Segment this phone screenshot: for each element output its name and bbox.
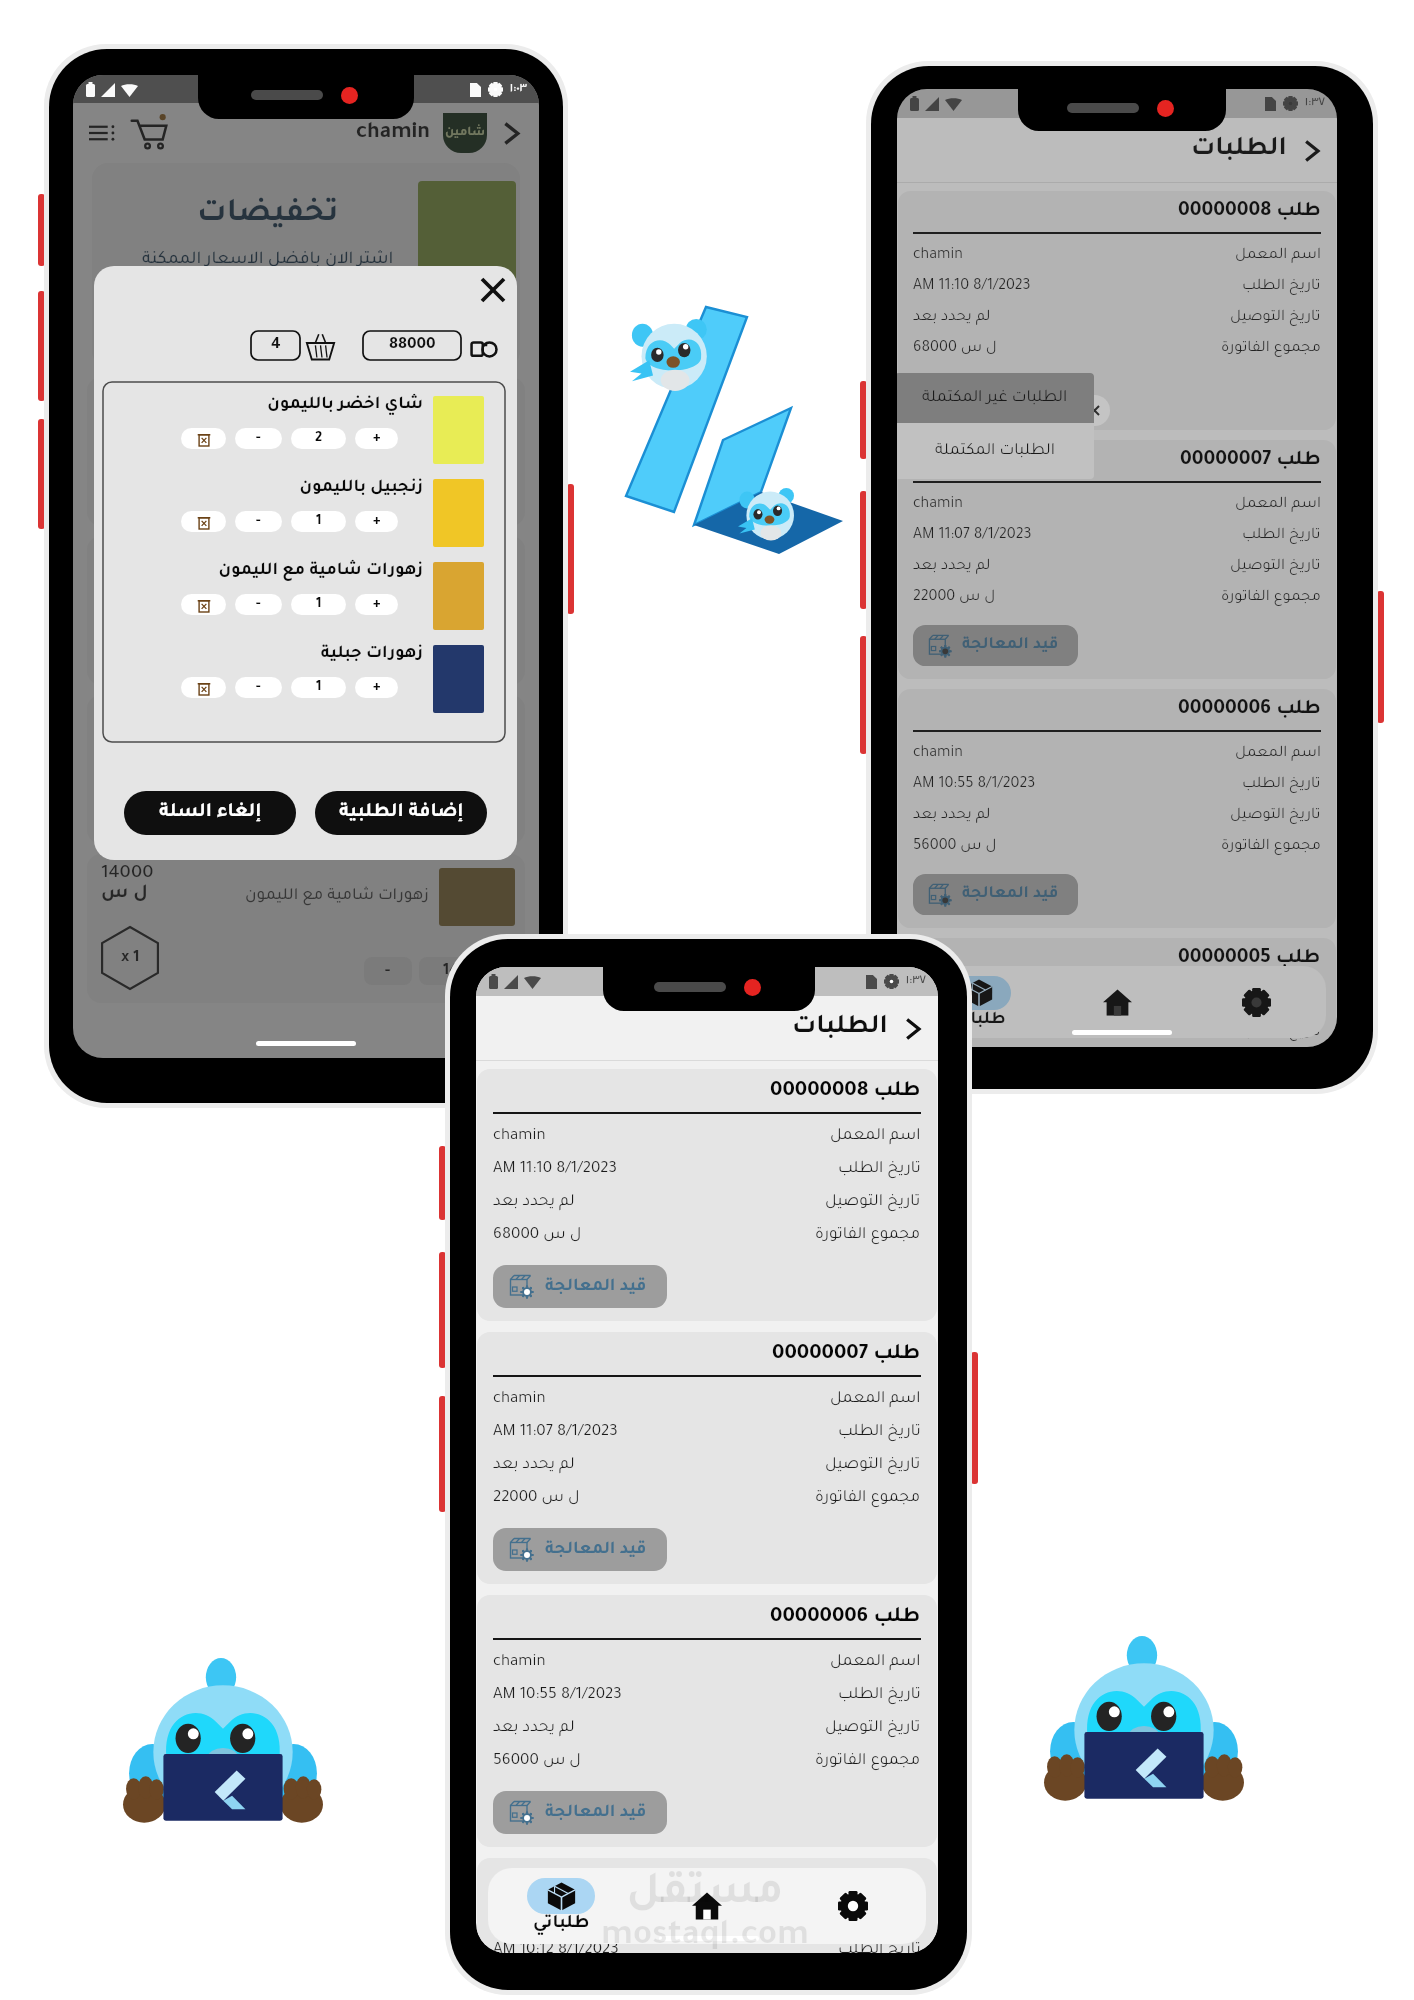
button[interactable]: - bbox=[235, 511, 282, 532]
button[interactable]: Settings bbox=[780, 1868, 926, 1944]
button[interactable]: 1 bbox=[291, 677, 346, 698]
staticText: - bbox=[256, 431, 261, 446]
button[interactable]: طلب 00000007 bbox=[898, 440, 1336, 679]
button[interactable]: إضافة الطلبية bbox=[315, 791, 487, 835]
button[interactable]: إلغاء السلة bbox=[124, 791, 296, 835]
staticText: 4 bbox=[271, 337, 281, 354]
staticText: 19000 bbox=[101, 387, 153, 407]
staticText: - bbox=[385, 645, 391, 662]
button[interactable]: 2 bbox=[291, 428, 346, 449]
button[interactable]: طلب 00000006 bbox=[898, 689, 1336, 928]
button[interactable]: الطلبات غير المكتملة bbox=[897, 373, 1094, 423]
button[interactable]: - bbox=[364, 639, 412, 667]
button[interactable]: - bbox=[364, 798, 412, 826]
button[interactable]: - bbox=[364, 480, 412, 508]
button[interactable]: + bbox=[355, 511, 398, 532]
other: Back bbox=[902, 1018, 924, 1040]
button[interactable] bbox=[181, 428, 226, 449]
button[interactable]: - bbox=[364, 957, 412, 985]
button[interactable]: + bbox=[355, 594, 398, 615]
button[interactable]: - bbox=[235, 428, 282, 449]
button[interactable]: زهورات شامية مع الليمون bbox=[87, 854, 525, 1003]
button[interactable]: شاي اخضر بالليمون الطبيعي المنعش bbox=[87, 377, 525, 526]
button[interactable]: chamin bbox=[356, 113, 523, 153]
button[interactable] bbox=[181, 511, 226, 532]
staticText: ١:٠٣ bbox=[510, 83, 528, 96]
staticText: - bbox=[256, 680, 261, 695]
button[interactable]: 17000 bbox=[419, 798, 511, 826]
button[interactable]: طلب 00000007 bbox=[477, 1332, 937, 1584]
button[interactable]: طلب 00000008 bbox=[477, 1069, 937, 1321]
staticText: شاي اخضر بالليمون bbox=[267, 396, 423, 414]
staticText: اسم المعمل bbox=[830, 1128, 921, 1145]
staticText: طلب 00000005 bbox=[1178, 949, 1321, 970]
button[interactable]: Close bbox=[482, 279, 504, 301]
staticText: x 1 bbox=[121, 950, 140, 967]
staticText: قيد المعالجة bbox=[962, 886, 1059, 903]
staticText: اسم المعمل bbox=[830, 1917, 921, 1934]
staticText: تاريخ الطلب bbox=[1242, 279, 1321, 295]
button[interactable]: Home bbox=[1048, 966, 1187, 1038]
button[interactable]: قيد المعالجة bbox=[913, 376, 1078, 417]
button[interactable]: طلب 00000005 bbox=[477, 1858, 937, 1953]
staticText: AM 10:12 8/1/2023 bbox=[913, 1025, 1033, 1041]
button[interactable]: طلب 00000006 bbox=[477, 1595, 937, 1847]
button[interactable]: Close bbox=[1079, 395, 1110, 426]
staticText: تاريخ الطلب bbox=[838, 1424, 921, 1441]
staticText: إضافة الطلبية bbox=[339, 803, 464, 823]
staticText: 14000 bbox=[443, 963, 488, 980]
button[interactable]: 1 bbox=[291, 594, 346, 615]
staticText: 88000 bbox=[389, 337, 436, 354]
staticText: زهورات شامية مع الليمون bbox=[245, 888, 429, 905]
button[interactable]: طلباتي bbox=[909, 966, 1048, 1038]
staticText: طلباتي bbox=[533, 1915, 590, 1934]
button[interactable]: قيد المعالجة bbox=[493, 1528, 667, 1571]
staticText: اسم المعمل bbox=[1235, 746, 1321, 762]
staticText: + bbox=[373, 431, 381, 446]
staticText: الطلبات غير المكتملة bbox=[922, 390, 1068, 407]
staticText: طلباتي bbox=[952, 1011, 1006, 1029]
staticText: ١:٣٧ bbox=[1305, 97, 1326, 110]
staticText: مجموع الفاتورة bbox=[1221, 839, 1321, 855]
button[interactable]: 14000 bbox=[419, 639, 511, 667]
button[interactable]: زنجبيل بالليمون الخلطة الطبيعية للتنحيف bbox=[87, 695, 525, 844]
button[interactable]: 1 bbox=[291, 511, 346, 532]
staticText: شاي اخضر بالليمون الطبيعي المنعش bbox=[159, 411, 429, 428]
button[interactable]: Cart bbox=[131, 115, 167, 151]
staticText: تاريخ الطلب bbox=[838, 1687, 921, 1704]
button[interactable]: - bbox=[235, 594, 282, 615]
button[interactable]: Home bbox=[634, 1868, 780, 1944]
other: Back bbox=[1301, 140, 1323, 162]
button[interactable] bbox=[181, 594, 226, 615]
button[interactable]: طلباتي bbox=[488, 1868, 634, 1944]
staticText: 22000 ل س bbox=[493, 1490, 580, 1507]
button[interactable]: زهورات شامية مع الليمون bbox=[87, 536, 525, 685]
staticText: chamin bbox=[913, 995, 963, 1011]
staticText: chamin bbox=[913, 497, 963, 513]
button[interactable]: الطلبات المكتملة bbox=[897, 423, 1094, 479]
staticText: طلب 00000005 bbox=[771, 1870, 921, 1892]
staticText: 56000 ل س bbox=[913, 839, 997, 855]
button[interactable]: Menu bbox=[89, 120, 115, 146]
button[interactable]: 19000 bbox=[419, 480, 511, 508]
button[interactable]: Settings bbox=[1187, 966, 1326, 1038]
button[interactable]: الطلبات bbox=[1191, 137, 1323, 164]
button[interactable]: 14000 bbox=[419, 957, 511, 985]
button[interactable]: + bbox=[355, 428, 398, 449]
button[interactable]: قيد المعالجة bbox=[913, 874, 1078, 915]
button[interactable]: - bbox=[235, 677, 282, 698]
staticText: - bbox=[385, 486, 391, 503]
staticText: 19000 bbox=[443, 486, 487, 503]
button[interactable]: الطلبات bbox=[792, 1015, 924, 1042]
staticText: تاريخ التوصيل bbox=[825, 1720, 921, 1737]
staticText: x 1 bbox=[121, 791, 140, 808]
staticText: تاريخ التوصيل bbox=[1230, 559, 1321, 575]
staticText: تاريخ الطلب bbox=[1242, 528, 1321, 544]
button[interactable]: قيد المعالجة bbox=[493, 1791, 667, 1834]
button[interactable]: + bbox=[355, 677, 398, 698]
button[interactable]: طلب 00000005 bbox=[898, 938, 1336, 1047]
button[interactable] bbox=[181, 677, 226, 698]
button[interactable]: قيد المعالجة bbox=[493, 1265, 667, 1308]
button[interactable]: طلب 00000008 bbox=[898, 191, 1336, 430]
button[interactable]: قيد المعالجة bbox=[913, 625, 1078, 666]
